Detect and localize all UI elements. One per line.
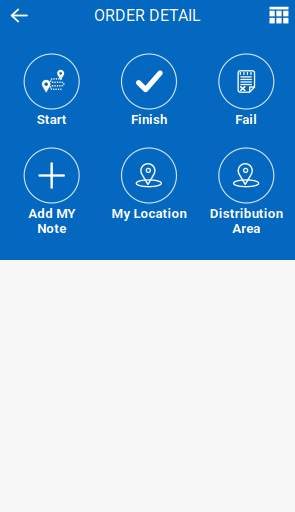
- staticText: Fail: [235, 112, 257, 127]
- staticText: Add MY: [28, 206, 75, 221]
- button[interactable]: Add MY: [3, 148, 100, 236]
- button[interactable]: Finish: [100, 54, 198, 127]
- staticText: My Location: [111, 206, 186, 221]
- button[interactable]: Start: [3, 54, 100, 127]
- button[interactable]: Fail: [198, 54, 295, 127]
- staticText: Area: [232, 221, 260, 236]
- staticText: Distribution: [210, 206, 283, 221]
- staticText: Note: [37, 221, 66, 236]
- staticText: Finish: [131, 112, 167, 127]
- staticText: Start: [37, 112, 67, 127]
- button[interactable]: Grid view: [264, 0, 294, 31]
- button[interactable]: My Location: [100, 148, 198, 221]
- staticText: ORDER DETAIL: [94, 6, 201, 25]
- button[interactable]: Distribution: [198, 148, 295, 236]
- button[interactable]: Back: [2, 0, 36, 31]
